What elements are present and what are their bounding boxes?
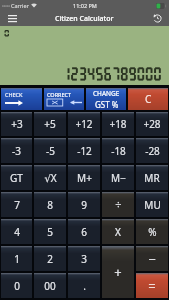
staticText: √X [44, 171, 57, 185]
button[interactable]: C [128, 88, 168, 110]
button[interactable]: X [102, 219, 134, 244]
staticText: +28 [143, 117, 161, 131]
staticText: +12 [75, 117, 93, 131]
staticText: Citizen Calculator [55, 14, 114, 24]
staticText: C [145, 92, 152, 106]
button[interactable]: 5 [34, 219, 66, 244]
staticText: MU [144, 198, 161, 212]
staticText: GT [10, 171, 23, 185]
button[interactable]: -5 [34, 138, 66, 163]
button[interactable]: 4 [1, 219, 32, 244]
button[interactable]: +3 [1, 112, 32, 136]
button[interactable]: 0 [1, 273, 32, 298]
staticText: -3 [12, 144, 21, 158]
button[interactable]: Menu [0, 11, 24, 26]
button[interactable]: -12 [68, 138, 100, 163]
button[interactable]: M+ [68, 165, 100, 190]
staticText: % [148, 225, 157, 239]
staticText: -28 [145, 144, 160, 158]
staticText: -18 [111, 144, 126, 158]
button[interactable]: MU [136, 192, 168, 217]
button[interactable]: √X [34, 165, 66, 190]
button[interactable]: + [102, 246, 134, 298]
button[interactable]: = [136, 273, 168, 298]
button[interactable]: − [136, 246, 168, 271]
button[interactable]: GT [1, 165, 32, 190]
button[interactable]: 8 [34, 192, 66, 217]
button[interactable]: +28 [136, 112, 168, 136]
button[interactable]: -18 [102, 138, 134, 163]
button[interactable]: History [145, 11, 169, 26]
button[interactable]: 9 [68, 192, 100, 217]
button[interactable]: 7 [1, 192, 32, 217]
staticText: 5 [47, 225, 53, 239]
staticText: Carrier [11, 2, 29, 9]
staticText: GST % [95, 99, 119, 110]
button[interactable]: CHECK [1, 88, 42, 110]
staticText: 00 [44, 279, 56, 293]
button[interactable]: % [136, 219, 168, 244]
staticText: 11:02 PM [73, 2, 97, 9]
staticText: +5 [44, 117, 56, 131]
staticText: M+ [77, 171, 92, 185]
staticText: 1 [14, 252, 20, 266]
staticText: -5 [46, 144, 55, 158]
staticText: . [83, 279, 86, 293]
button[interactable]: ÷ [102, 192, 134, 217]
button[interactable]: -3 [1, 138, 32, 163]
staticText: 2 [47, 252, 53, 266]
button[interactable]: 1 [1, 246, 32, 271]
button[interactable]: +18 [102, 112, 134, 136]
staticText: MR [144, 171, 160, 185]
button[interactable]: . [68, 273, 100, 298]
staticText: -12 [77, 144, 92, 158]
staticText: 7 [14, 198, 20, 212]
staticText: 9 [81, 198, 87, 212]
staticText: +18 [109, 117, 127, 131]
staticText: CORRECT [47, 91, 72, 98]
button[interactable]: 2 [34, 246, 66, 271]
staticText: − [148, 250, 156, 268]
staticText: = [148, 277, 156, 295]
button[interactable]: +12 [68, 112, 100, 136]
staticText: CHECK [5, 91, 23, 98]
button[interactable]: MR [136, 165, 168, 190]
button[interactable]: 3 [68, 246, 100, 271]
staticText: +3 [11, 117, 23, 131]
button[interactable]: CHANGE [86, 88, 126, 110]
staticText: CHANGE [93, 89, 120, 98]
staticText: + [114, 263, 122, 281]
staticText: X [115, 225, 121, 239]
button[interactable]: CORRECT [44, 88, 84, 110]
button[interactable]: +5 [34, 112, 66, 136]
button[interactable]: 00 [34, 273, 66, 298]
button[interactable]: 6 [68, 219, 100, 244]
staticText: 8 [47, 198, 53, 212]
button[interactable]: M− [102, 165, 134, 190]
button[interactable]: -28 [136, 138, 168, 163]
staticText: 0 [14, 279, 20, 293]
staticText: 4 [14, 225, 20, 239]
staticText: 6 [81, 225, 87, 239]
staticText: ÷ [115, 197, 122, 212]
staticText: 3 [81, 252, 87, 266]
staticText: M− [111, 171, 126, 185]
